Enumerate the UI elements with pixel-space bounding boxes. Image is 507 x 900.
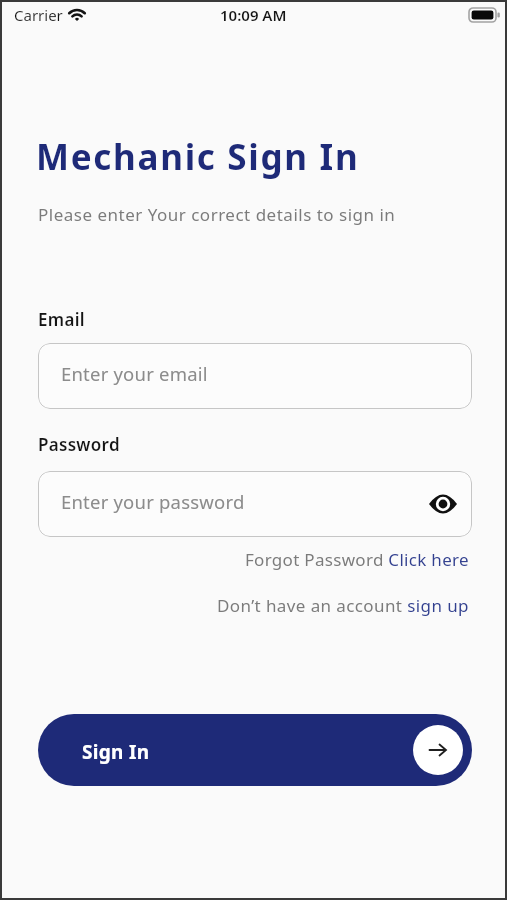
staticText: Email [38,308,85,331]
button[interactable]: Forgot Password Click here [245,548,469,571]
button[interactable]: Enter your email [38,343,472,409]
staticText: Carrier [14,5,63,25]
staticText: Password [38,433,120,456]
staticText: Sign In [82,739,150,765]
button[interactable]: Enter your password [38,471,472,537]
button[interactable]: Don’t have an account sign up [217,594,469,617]
button[interactable]: Sign In [38,714,472,786]
button[interactable] [428,494,458,514]
staticText: Please enter Your correct details to sig… [38,203,396,226]
staticText: Mechanic Sign In [36,133,360,181]
staticText: 10:09 AM [220,5,287,25]
staticText: Enter your password [61,489,245,514]
staticText: Enter your email [61,361,208,386]
